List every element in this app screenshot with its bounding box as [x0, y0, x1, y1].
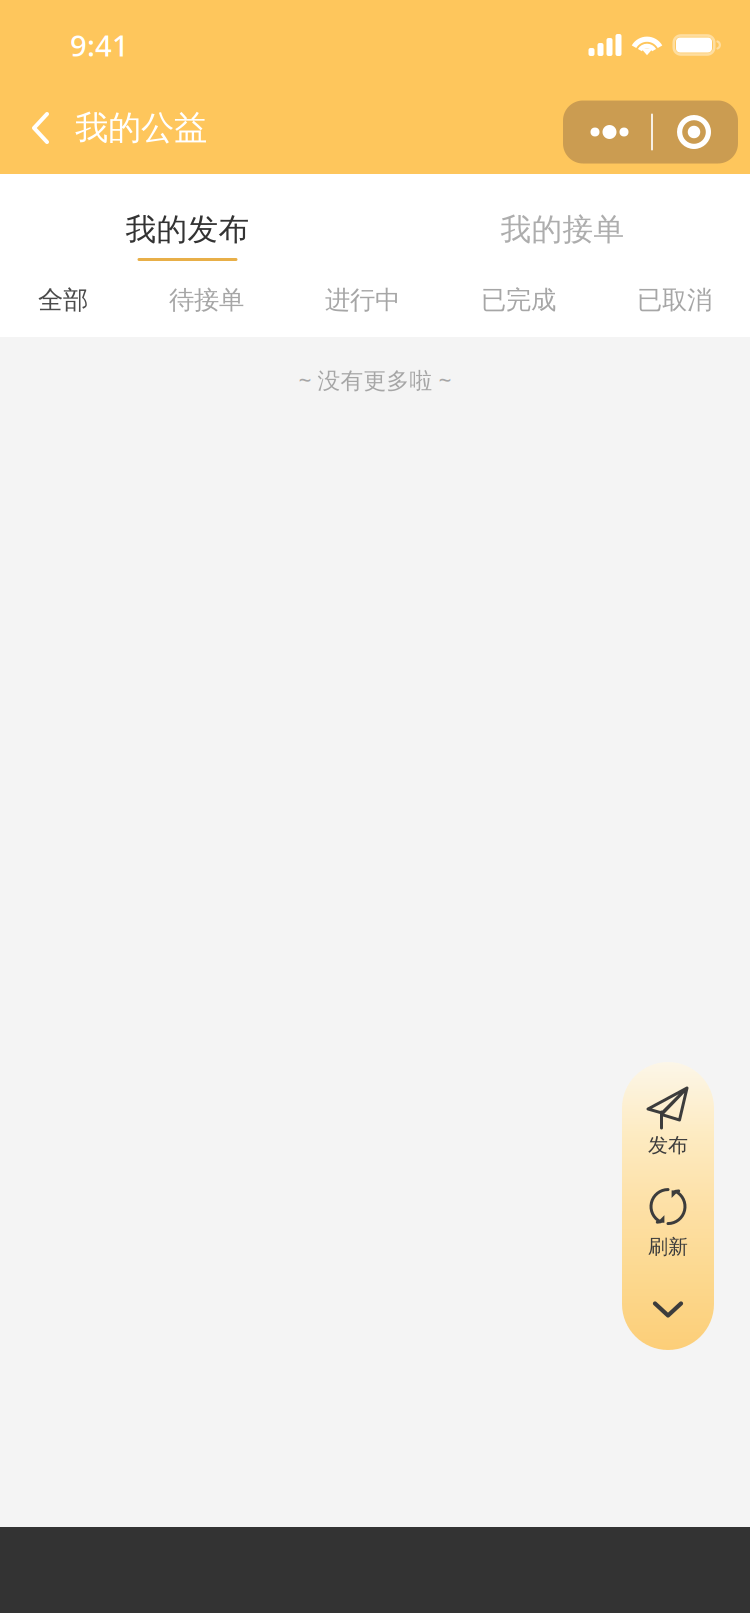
button[interactable]: 待接单: [167, 263, 246, 337]
staticText: 已完成: [481, 284, 556, 315]
staticText: 发布: [648, 1133, 688, 1158]
staticText: 我的发布: [125, 211, 249, 248]
button[interactable]: 已完成: [479, 263, 558, 337]
staticText: 进行中: [325, 284, 400, 315]
staticText: 我的公益: [75, 107, 207, 148]
staticText: 我的接单: [500, 211, 624, 248]
button[interactable]: 已取消: [635, 263, 714, 337]
button[interactable]: 我的发布: [0, 174, 375, 263]
staticText: 全部: [38, 284, 88, 315]
staticText: 9:41: [70, 25, 129, 64]
staticText: 刷新: [648, 1235, 688, 1259]
button[interactable]: Collapse: [622, 1301, 714, 1350]
button[interactable]: Close mini program: [653, 100, 738, 163]
button[interactable]: 刷新: [622, 1171, 714, 1266]
staticText: ~ 没有更多啦 ~: [298, 365, 451, 395]
staticText: 已取消: [637, 284, 712, 315]
button[interactable]: 发布: [622, 1062, 714, 1171]
staticText: 待接单: [169, 284, 244, 315]
button[interactable]: Back: [0, 90, 223, 174]
button[interactable]: 进行中: [323, 263, 402, 337]
button[interactable]: More: [563, 100, 651, 163]
button[interactable]: 我的接单: [375, 174, 750, 263]
button[interactable]: 全部: [36, 263, 90, 337]
